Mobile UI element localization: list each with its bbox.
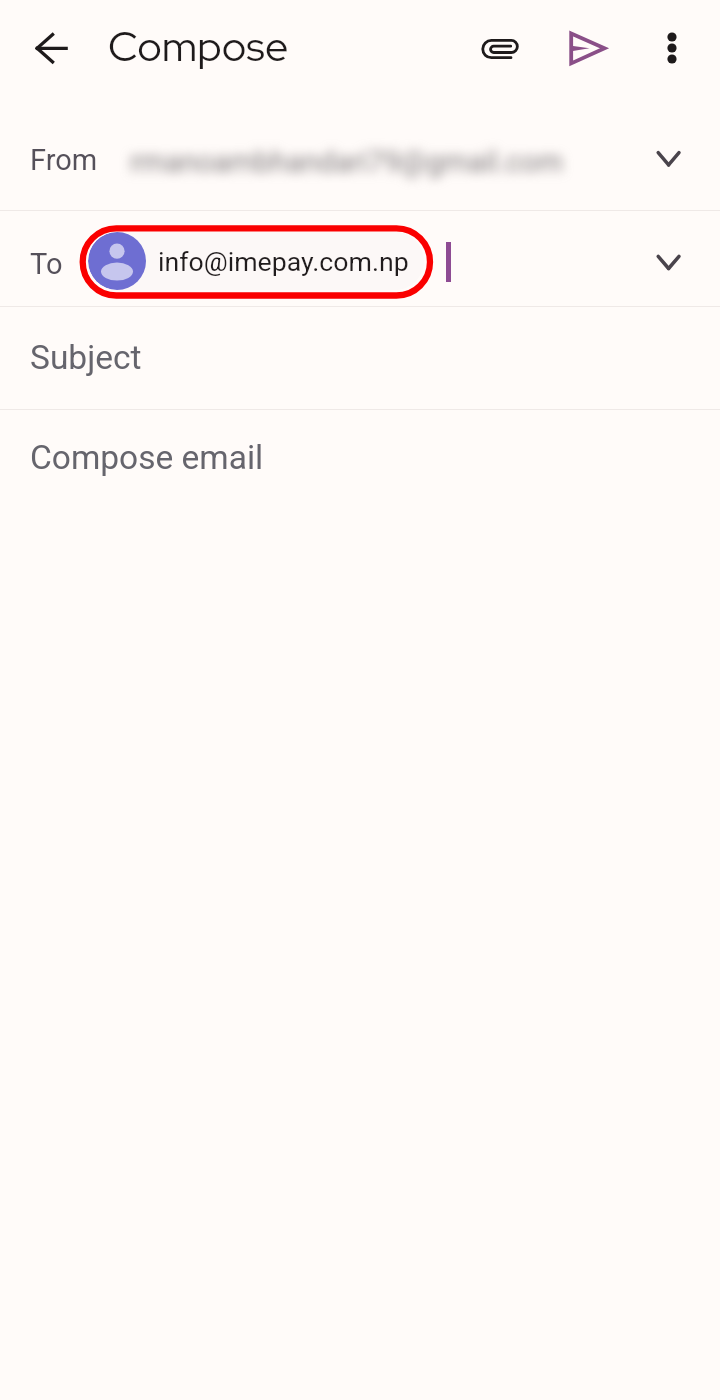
button[interactable]: info@imepay.com.np: [88, 232, 424, 290]
staticText: Subject: [30, 338, 142, 377]
button[interactable]: From field: [0, 110, 720, 210]
button[interactable]: Expand recipients: [636, 126, 700, 190]
button[interactable]: Attach file: [468, 16, 532, 80]
button[interactable]: To field: [0, 211, 720, 306]
staticText: Compose: [108, 19, 289, 74]
staticText: info@imepay.com.np: [158, 246, 409, 277]
button[interactable]: Send: [555, 16, 619, 80]
staticText: From: [30, 143, 98, 177]
button[interactable]: More options: [640, 16, 704, 80]
button[interactable]: Back: [19, 17, 83, 81]
staticText: rmanoambhandari79@gmail.com: [130, 145, 563, 179]
button[interactable]: Subject: [0, 306, 720, 409]
staticText: Compose email: [30, 438, 264, 477]
button[interactable]: Expand recipients: [636, 230, 700, 294]
button[interactable]: Compose email: [0, 409, 720, 512]
staticText: To: [30, 247, 63, 281]
